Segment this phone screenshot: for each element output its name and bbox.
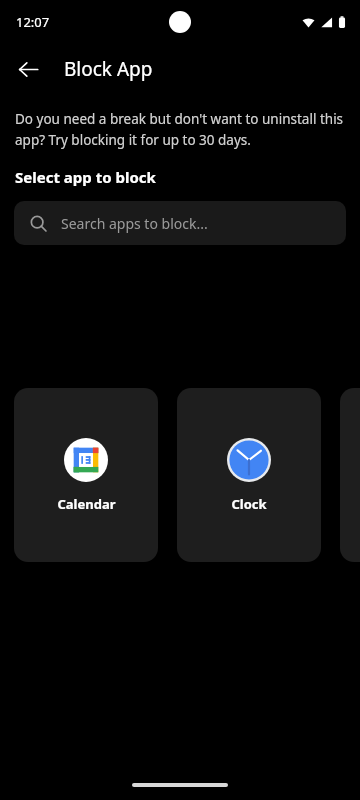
staticText: Clock — [231, 495, 267, 513]
staticText: Do you need a break but don't want to un… — [15, 110, 345, 149]
staticText: 12:07 — [16, 13, 50, 31]
staticText: Calendar — [57, 495, 116, 513]
button[interactable]: Clock — [177, 388, 321, 562]
staticText: Search apps to block... — [61, 214, 208, 233]
button[interactable]: Back — [8, 49, 48, 89]
staticText: Block App — [64, 56, 153, 82]
button[interactable]: Chrome — [340, 388, 360, 562]
button[interactable]: Calendar — [14, 388, 158, 562]
staticText: Select app to block — [15, 167, 345, 187]
button[interactable]: Search apps to block... — [14, 201, 346, 245]
